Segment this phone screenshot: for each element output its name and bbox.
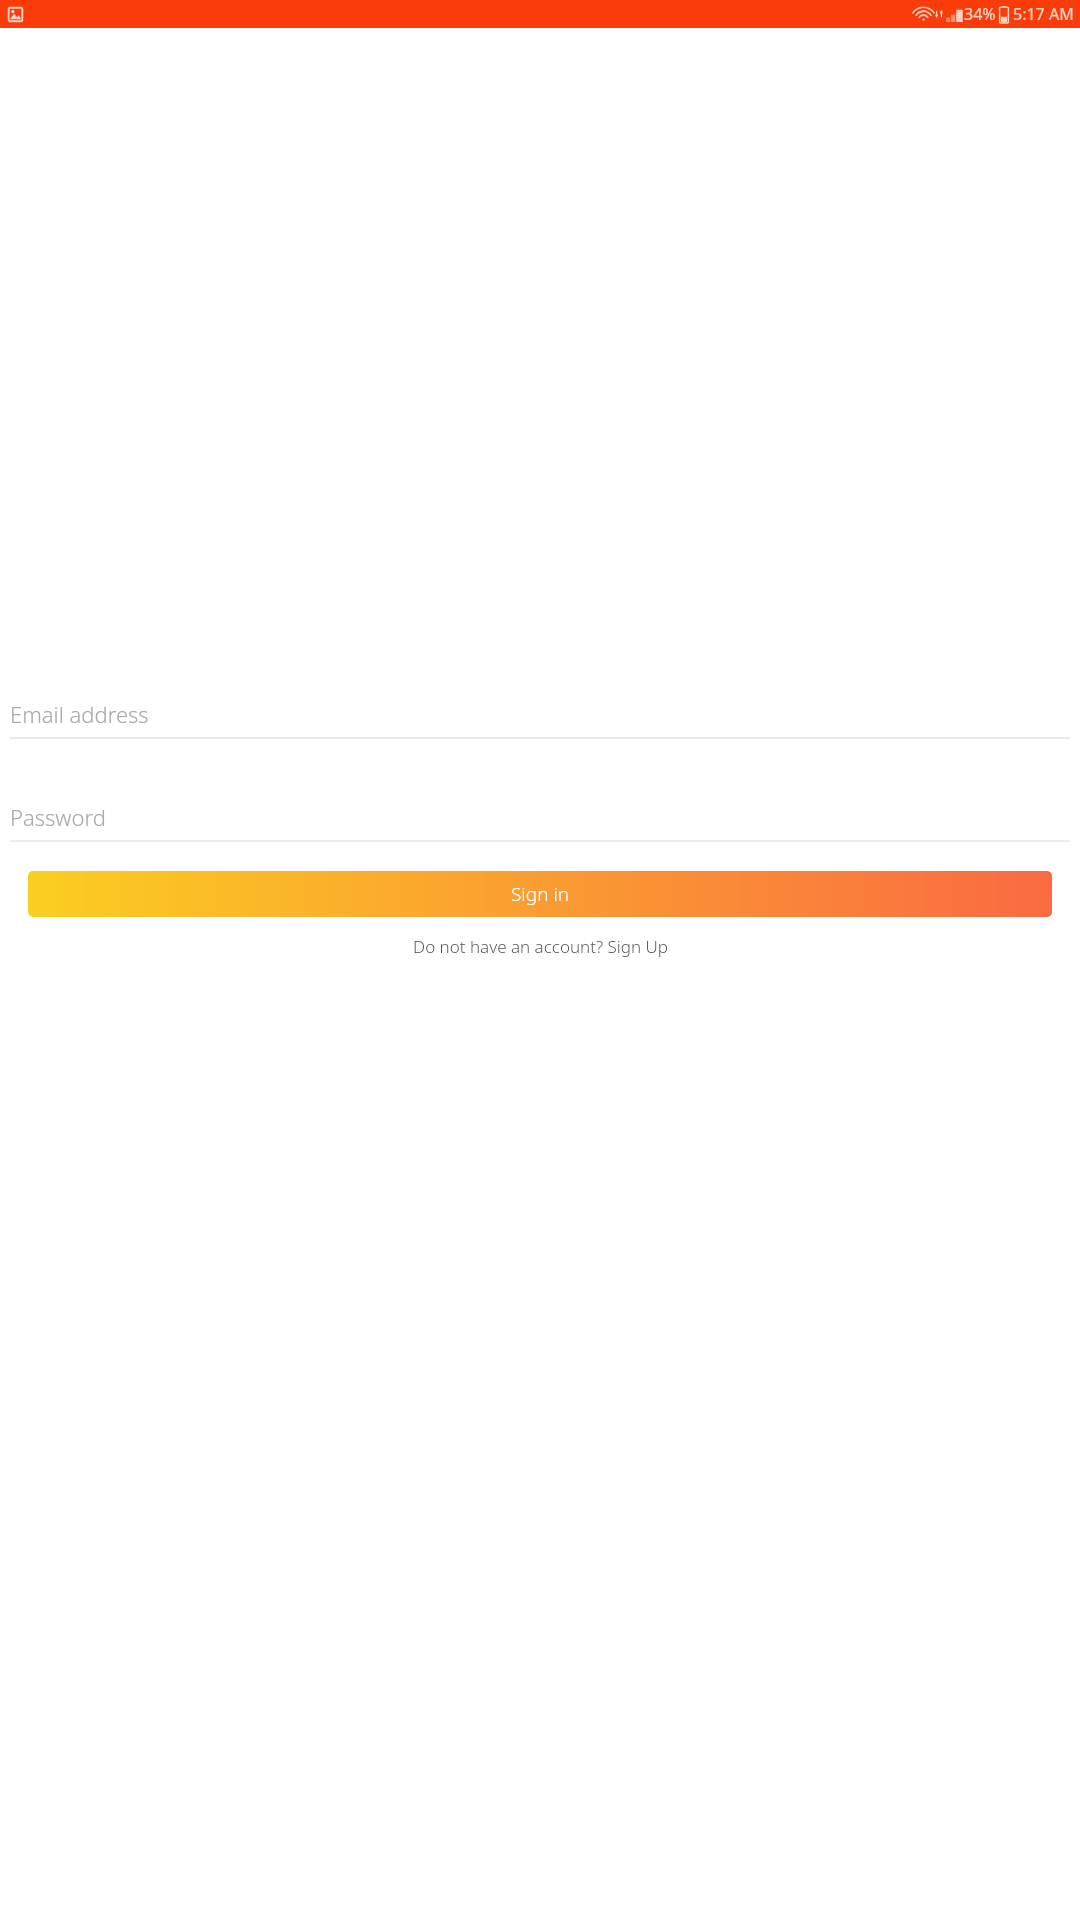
staticText: Do not have an account? Sign Up bbox=[413, 935, 668, 958]
button[interactable]: Sign in bbox=[28, 871, 1052, 917]
staticText: Password bbox=[10, 802, 106, 832]
other: Screenshot notification bbox=[7, 6, 24, 23]
staticText: 34% bbox=[964, 3, 996, 25]
staticText: Sign in bbox=[511, 881, 570, 907]
button[interactable]: Do not have an account? Sign Up bbox=[0, 927, 1080, 966]
button[interactable]: Password bbox=[0, 793, 1080, 842]
button[interactable]: Email address bbox=[0, 690, 1080, 739]
staticText: Email address bbox=[10, 699, 149, 729]
staticText: 5:17 AM bbox=[1013, 3, 1074, 25]
